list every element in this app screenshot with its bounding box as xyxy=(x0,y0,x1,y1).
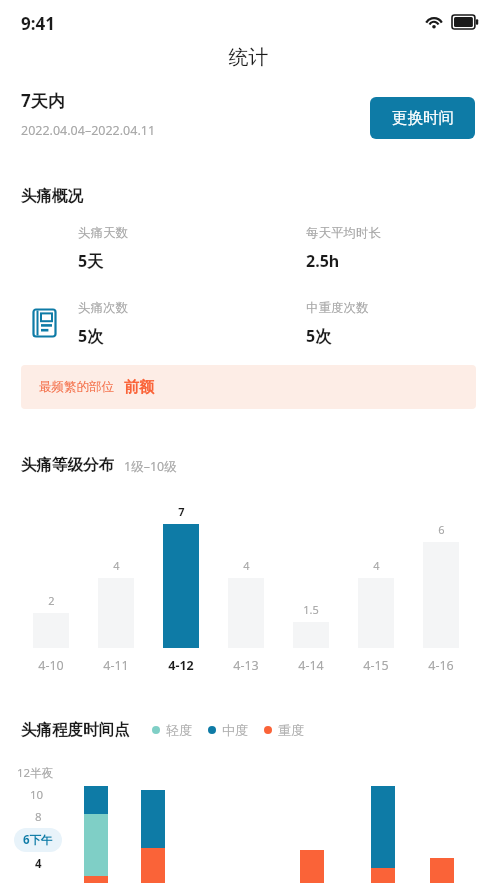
staticText: 10 xyxy=(30,787,44,803)
staticText: 4 xyxy=(373,558,380,573)
staticText: 4-11 xyxy=(103,657,129,674)
staticText: 2022.04.04–2022.04.11 xyxy=(21,122,156,139)
staticText: 1级–10级 xyxy=(124,458,177,475)
staticText: 头痛概况 xyxy=(21,186,83,206)
staticText: 头痛等级分布 xyxy=(21,455,114,475)
staticText: 8 xyxy=(35,809,42,825)
staticText: 5次 xyxy=(306,325,332,347)
staticText: 5天 xyxy=(78,250,104,272)
staticText: 4-15 xyxy=(363,657,389,674)
staticText: 头痛程度时间点 xyxy=(21,720,130,740)
staticText: 4-12 xyxy=(168,657,194,674)
staticText: 12半夜 xyxy=(17,765,54,781)
staticText: 更换时间 xyxy=(392,108,454,128)
staticText: 1.5 xyxy=(303,602,319,617)
staticText: 4-14 xyxy=(298,657,324,674)
staticText: 4 xyxy=(35,856,42,872)
staticText: 统计 xyxy=(0,45,497,70)
staticText: 轻度 xyxy=(166,722,192,738)
staticText: 中重度次数 xyxy=(306,300,369,316)
staticText: 中度 xyxy=(222,722,248,738)
button[interactable]: 更换时间 xyxy=(370,97,475,139)
staticText: 每天平均时长 xyxy=(306,225,381,241)
staticText: 6 xyxy=(438,522,445,537)
staticText: 4 xyxy=(113,558,120,573)
staticText: 4-13 xyxy=(233,657,259,674)
staticText: 重度 xyxy=(278,722,304,738)
staticText: 4-16 xyxy=(428,657,454,674)
staticText: 2.5h xyxy=(306,250,340,272)
staticText: 5次 xyxy=(78,325,104,347)
staticText: 4-10 xyxy=(38,657,64,674)
staticText: 7天内 xyxy=(21,89,65,112)
staticText: 6下午 xyxy=(23,832,53,848)
staticText: 2 xyxy=(48,593,55,608)
staticText: 4 xyxy=(243,558,250,573)
staticText: 头痛天数 xyxy=(78,225,128,241)
button[interactable]: 最频繁的部位 xyxy=(21,365,476,409)
staticText: 头痛次数 xyxy=(78,300,128,316)
staticText: 前额 xyxy=(124,378,154,397)
staticText: 最频繁的部位 xyxy=(39,379,114,395)
staticText: 9:41 xyxy=(21,12,55,35)
staticText: 7 xyxy=(178,504,185,519)
